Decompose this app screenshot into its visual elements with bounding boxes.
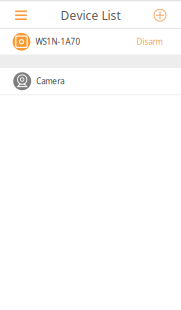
staticText: Camera xyxy=(36,76,64,86)
staticText: Disarm xyxy=(136,36,162,47)
button[interactable]: Camera xyxy=(0,68,181,94)
staticText: Device List xyxy=(60,7,120,23)
button[interactable]: Add device xyxy=(146,1,181,30)
button[interactable]: WS1N-1A70 xyxy=(0,29,181,54)
button[interactable]: Menu xyxy=(0,1,35,30)
staticText: WS1N-1A70 xyxy=(35,36,80,47)
